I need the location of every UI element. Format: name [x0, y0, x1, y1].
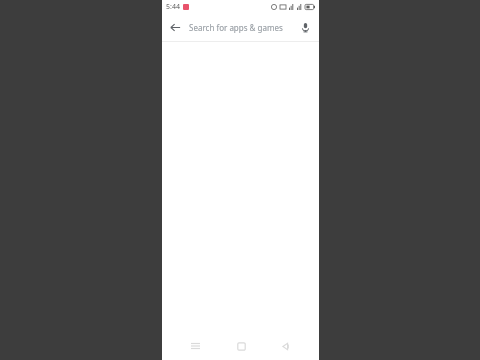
button[interactable]: Recent apps	[182, 333, 208, 359]
button[interactable]: Back	[162, 14, 189, 41]
staticText: Search for apps & games	[189, 22, 283, 33]
button[interactable]: Back	[273, 333, 299, 359]
button[interactable]: Voice search	[292, 14, 319, 41]
staticText: 5:44	[166, 2, 180, 12]
button[interactable]: Home	[228, 333, 254, 359]
button[interactable]: Search for apps & games	[189, 14, 292, 41]
